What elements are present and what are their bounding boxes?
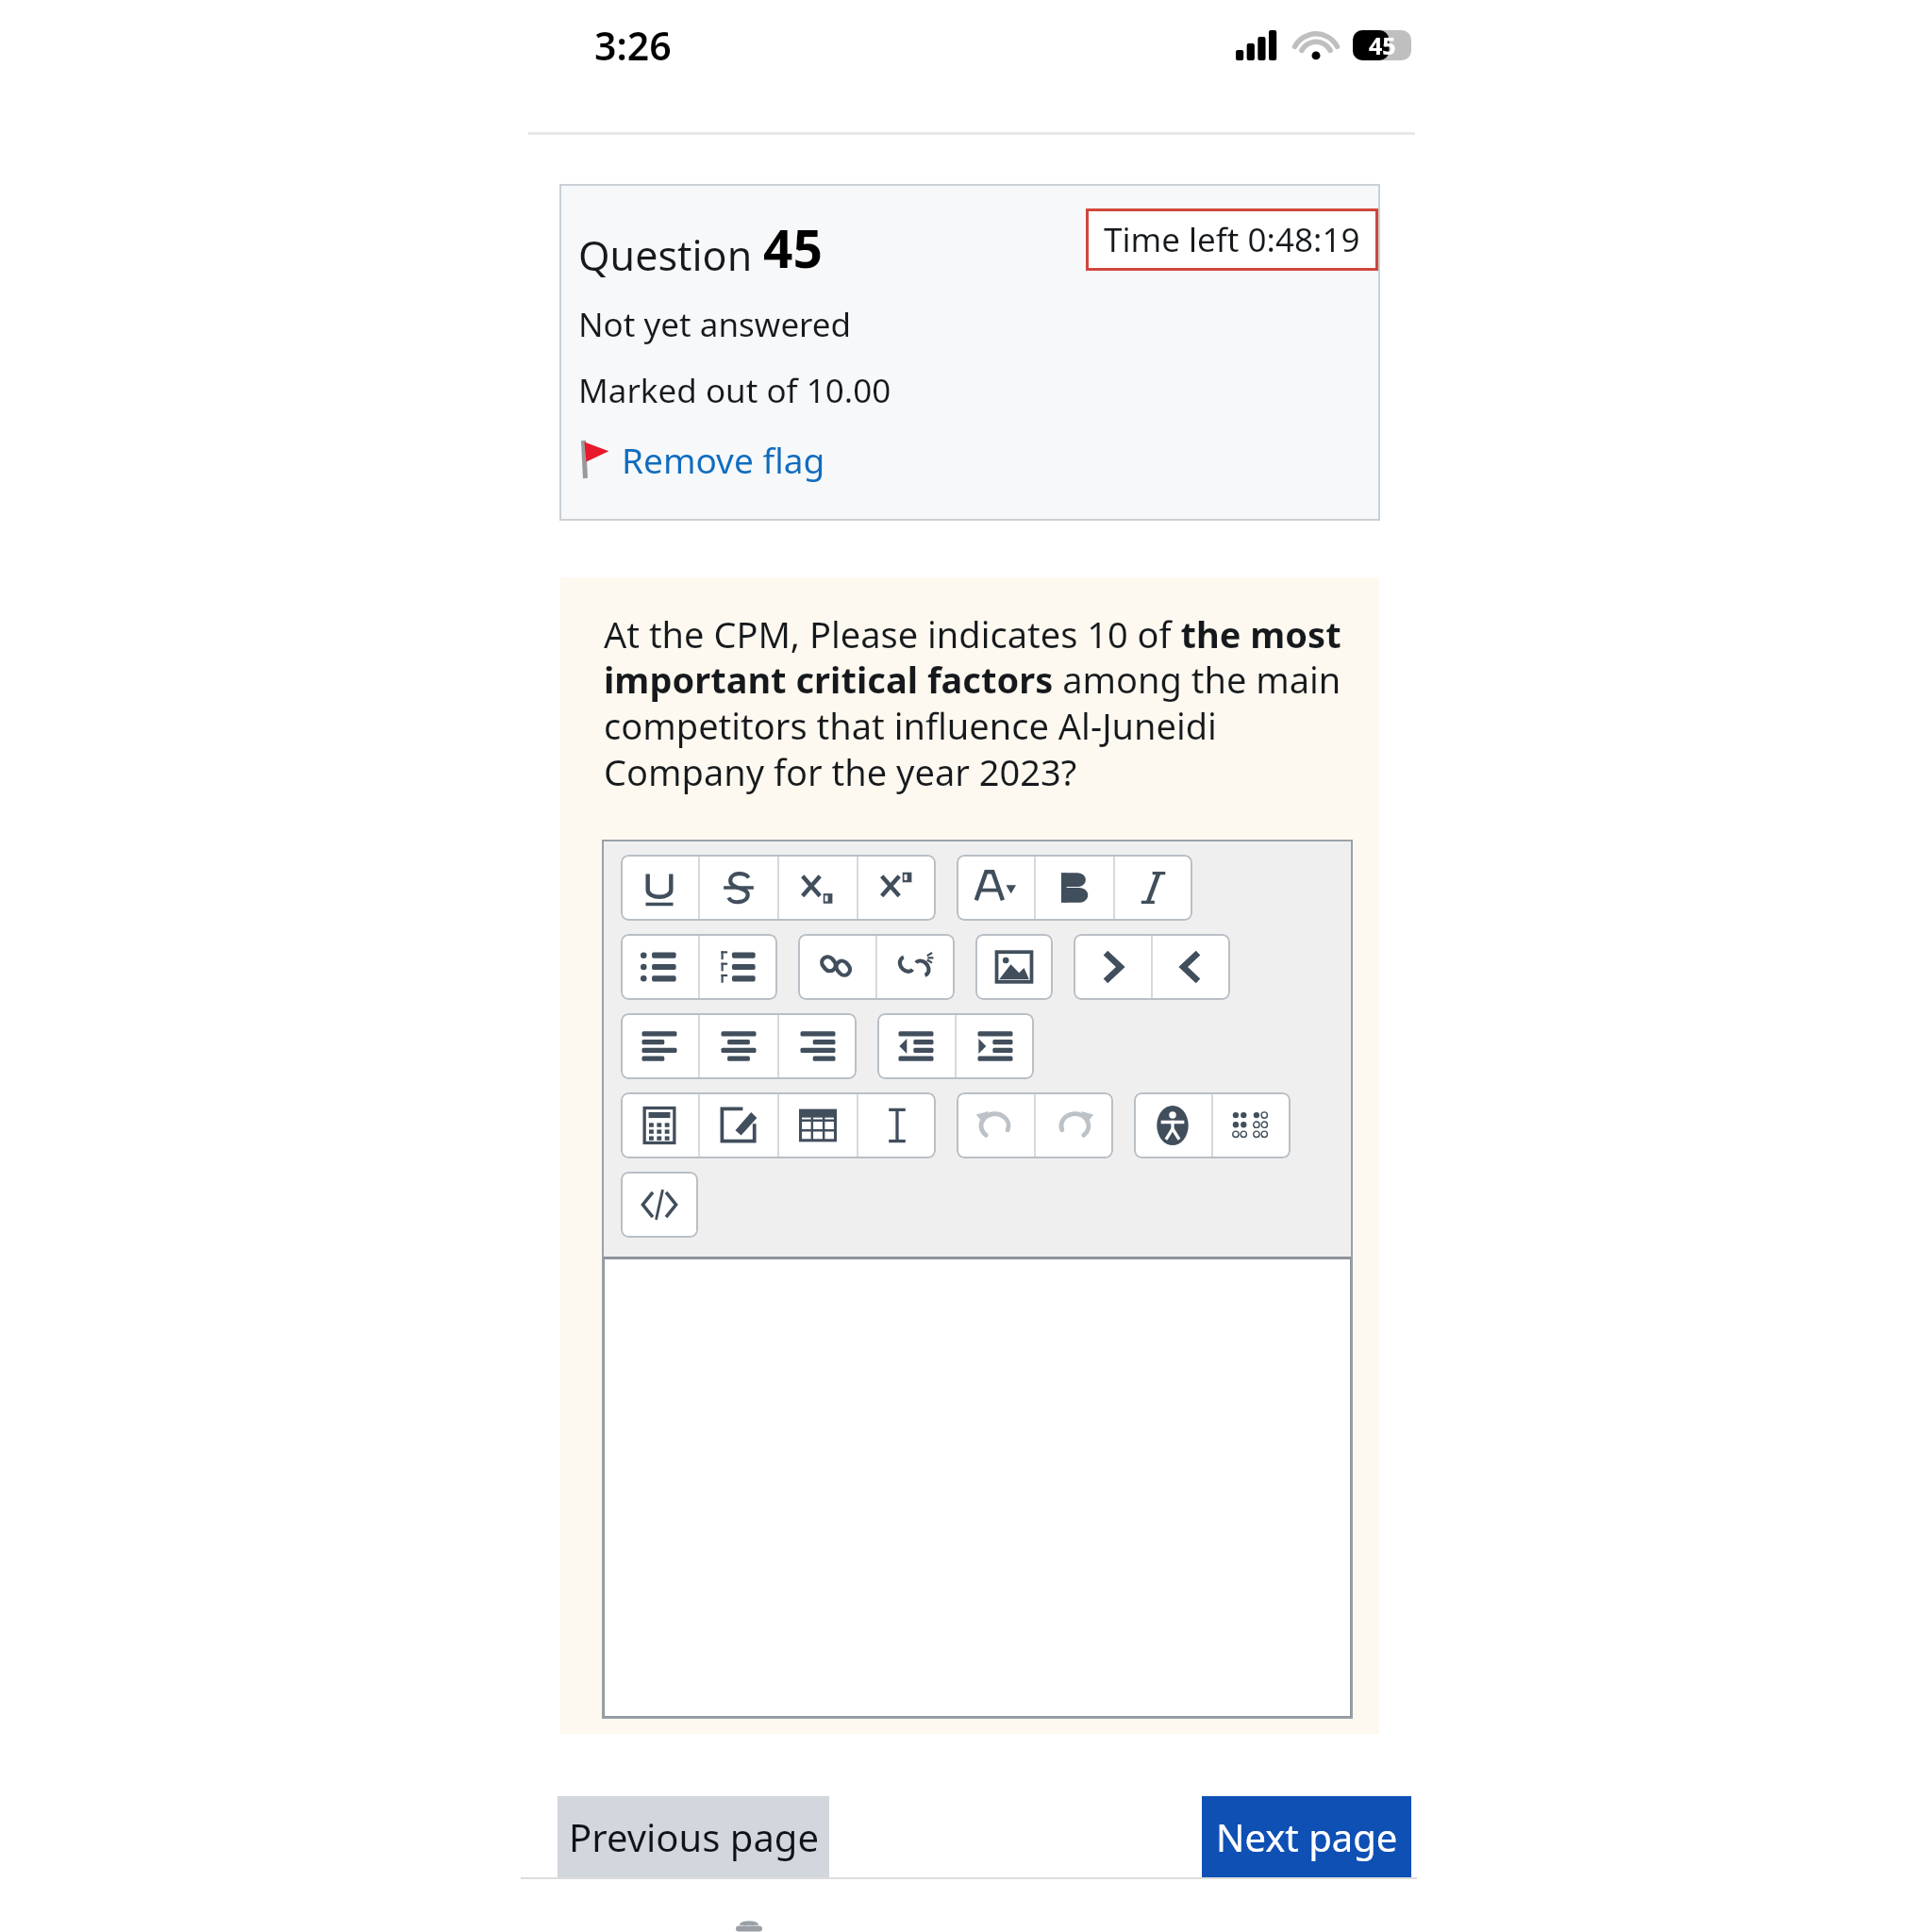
button[interactable]: Align center <box>700 1013 777 1079</box>
button[interactable]: Table <box>779 1092 857 1158</box>
button[interactable]: Accessibility checker <box>1134 1092 1211 1158</box>
staticText: Not yet answered <box>578 302 852 347</box>
button[interactable]: Remove link <box>877 934 955 1000</box>
button[interactable]: Remove flag <box>578 434 825 485</box>
button[interactable]: Align right <box>779 1013 857 1079</box>
button[interactable]: Decrease indent <box>877 1013 955 1079</box>
button[interactable]: Bulleted list <box>621 934 698 1000</box>
button[interactable]: Next page <box>1202 1796 1411 1877</box>
staticText: 45 <box>763 212 823 283</box>
button[interactable]: eclass.bethlehem.edu <box>736 1923 1143 1932</box>
button[interactable]: Subscript <box>779 855 857 921</box>
button[interactable]: Screen reader helper <box>1213 1092 1291 1158</box>
staticText: Next page <box>1216 1811 1398 1862</box>
button[interactable]: Undo <box>957 1092 1034 1158</box>
staticText: Time left 0:48:19 <box>1104 217 1360 262</box>
button[interactable] <box>602 1257 1353 1719</box>
staticText: At the CPM, Please indicates 10 of the m… <box>604 609 1351 797</box>
button[interactable]: Previous page <box>558 1796 829 1877</box>
staticText: 3:26 <box>594 19 672 72</box>
button[interactable]: Right to left <box>1074 934 1151 1000</box>
staticText: 45 <box>1369 29 1396 61</box>
button[interactable]: Time left 0:48:19 <box>1086 208 1378 271</box>
button[interactable]: Font color <box>957 855 1034 921</box>
button[interactable]: Insert image <box>975 934 1053 1000</box>
staticText: Remove flag <box>622 436 825 483</box>
staticText: Previous page <box>569 1811 819 1862</box>
button[interactable]: Underline <box>621 855 698 921</box>
button[interactable]: Insert link <box>798 934 875 1000</box>
button[interactable]: Superscript <box>858 855 936 921</box>
staticText: Marked out of 10.00 <box>578 368 891 413</box>
button[interactable]: HTML source <box>621 1172 698 1238</box>
button[interactable]: Bold <box>1036 855 1113 921</box>
button[interactable]: Special character <box>858 1092 936 1158</box>
button[interactable]: Italic <box>1115 855 1192 921</box>
button[interactable]: Draw <box>700 1092 777 1158</box>
button[interactable]: Numbered list <box>700 934 777 1000</box>
button[interactable]: Increase indent <box>957 1013 1034 1079</box>
staticText: Question <box>578 227 763 283</box>
button[interactable]: Redo <box>1036 1092 1113 1158</box>
button[interactable]: Strikethrough <box>700 855 777 921</box>
button[interactable]: Align left <box>621 1013 698 1079</box>
button[interactable]: Equation <box>621 1092 698 1158</box>
button[interactable]: Left to right <box>1153 934 1230 1000</box>
